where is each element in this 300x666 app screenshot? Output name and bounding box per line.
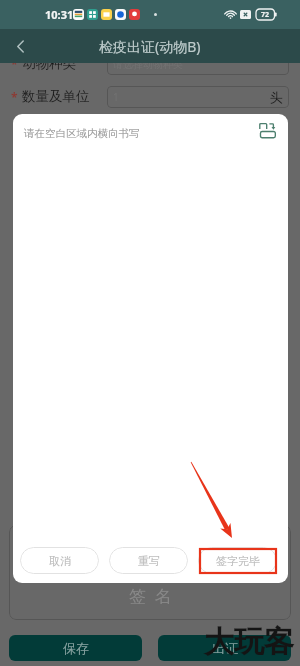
staticText: 出证 <box>212 640 238 656</box>
staticText: 检疫出证(动物B) <box>99 37 201 56</box>
button[interactable]: 请选择动物种类 <box>107 53 289 75</box>
button[interactable]: 出证 <box>158 635 291 661</box>
staticText: 大玩客 <box>204 623 294 661</box>
staticText: 重写 <box>138 554 160 568</box>
staticText: 10:31 <box>45 7 74 22</box>
staticText: 头 <box>270 89 283 105</box>
staticText: 动物种类 <box>22 55 76 72</box>
button[interactable]: 1 <box>107 86 289 108</box>
staticText: 请选择动物种类 <box>113 58 183 71</box>
staticText: * <box>11 89 18 105</box>
staticText: 签 名 <box>129 584 172 607</box>
staticText: 签字完毕 <box>216 554 260 568</box>
button[interactable]: 签字完毕 <box>198 547 277 574</box>
staticText: 数量及单位 <box>22 88 90 105</box>
staticText: 保存 <box>63 640 89 656</box>
button[interactable]: 取消 <box>20 547 99 574</box>
button[interactable]: Back <box>8 34 32 58</box>
staticText: 请在空白区域内横向书写 <box>24 127 140 140</box>
staticText: 取消 <box>49 554 71 568</box>
button[interactable]: Rotate screen <box>259 121 277 138</box>
staticText: * <box>11 56 18 72</box>
button[interactable]: 保存 <box>9 635 142 661</box>
button[interactable]: 签 名 <box>9 525 291 620</box>
button[interactable]: 重写 <box>109 547 188 574</box>
staticText: 72 <box>261 10 270 20</box>
